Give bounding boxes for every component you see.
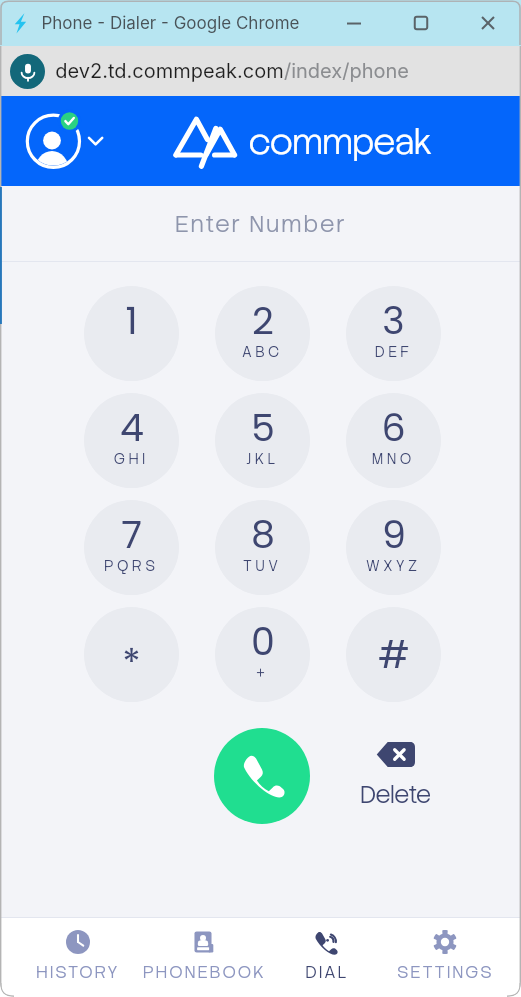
button[interactable]: 3 (346, 286, 441, 381)
button[interactable]: PHONEBOOK (143, 921, 263, 993)
staticText: * (122, 636, 141, 689)
staticText: dev2.td.commpeak.com (55, 59, 284, 83)
button[interactable]: Minimize (320, 0, 387, 46)
staticText: 6 (381, 401, 406, 454)
button[interactable]: 2 (215, 286, 310, 381)
button[interactable]: 4 (84, 393, 179, 488)
button[interactable]: Account menu (20, 108, 110, 178)
staticText: 2 (252, 294, 274, 347)
staticText: 3 (382, 294, 405, 347)
staticText: Phone - Dialer - Google Chrome (41, 13, 300, 34)
staticText: 0 (251, 615, 275, 668)
button[interactable]: Close (454, 0, 521, 46)
staticText: ABC (242, 342, 283, 361)
staticText: 8 (251, 508, 275, 561)
staticText: PQRS (104, 556, 159, 575)
button[interactable]: 6 (346, 393, 441, 488)
staticText: /index/phone (284, 59, 409, 83)
button[interactable]: 8 (215, 500, 310, 595)
staticText: 7 (121, 508, 142, 561)
button[interactable]: 0 (215, 607, 310, 702)
button[interactable]: # (346, 607, 441, 702)
button[interactable]: Delete (335, 742, 455, 810)
button[interactable]: Maximize (387, 0, 454, 46)
staticText: + (256, 663, 269, 682)
button[interactable]: * (84, 607, 179, 702)
staticText: PHONEBOOK (143, 961, 263, 983)
staticText: MNO (372, 449, 415, 468)
staticText: commpeak (249, 119, 432, 165)
staticText: Delete (360, 779, 431, 810)
button[interactable]: Voice search (10, 54, 45, 89)
button[interactable]: 7 (84, 500, 179, 595)
staticText: 1 (125, 294, 138, 347)
staticText: DIAL (305, 961, 349, 983)
button[interactable]: 5 (215, 393, 310, 488)
button[interactable]: SETTINGS (385, 921, 505, 993)
staticText: 9 (382, 508, 406, 561)
staticText: GHI (114, 449, 149, 468)
staticText: WXYZ (366, 556, 421, 575)
staticText: SETTINGS (397, 961, 494, 983)
staticText: HISTORY (36, 961, 120, 983)
staticText: TUV (243, 556, 282, 575)
staticText: JKL (246, 449, 279, 468)
staticText: Enter Number (175, 209, 347, 239)
button[interactable]: HISTORY (18, 921, 138, 993)
staticText: # (378, 628, 410, 681)
button[interactable]: DIAL (267, 921, 387, 993)
button[interactable]: 9 (346, 500, 441, 595)
staticText: 4 (120, 401, 144, 454)
staticText: 5 (251, 401, 275, 454)
button[interactable]: Call (214, 728, 310, 824)
staticText: DEF (375, 342, 413, 361)
button[interactable]: 1 (84, 286, 179, 381)
